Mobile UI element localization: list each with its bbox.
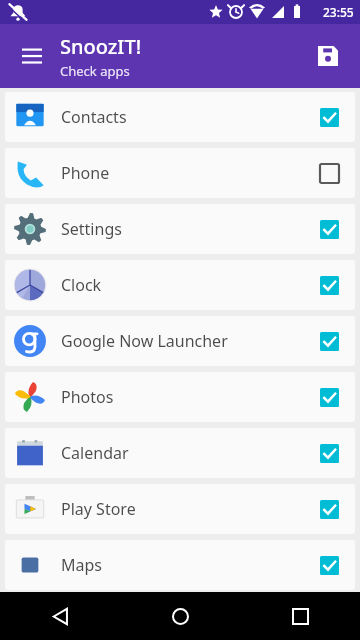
button[interactable]: Maps	[5, 540, 355, 590]
button[interactable]: Play Store	[5, 484, 355, 534]
button[interactable]: Checked Photos	[309, 377, 349, 417]
button[interactable]: Checked Contacts	[309, 97, 349, 137]
button[interactable]: Open navigation menu	[8, 32, 56, 80]
button[interactable]: Checked Clock	[309, 265, 349, 305]
button[interactable]: Checked Settings	[309, 209, 349, 249]
staticText: Google Now Launcher	[61, 330, 228, 352]
staticText: Play Store	[61, 498, 136, 520]
button[interactable]: Phone	[5, 148, 355, 198]
button[interactable]: Checked Google Now Launcher	[309, 321, 349, 361]
button[interactable]: Settings	[5, 204, 355, 254]
button[interactable]: Back	[0, 592, 120, 640]
staticText: SnoozIT!	[60, 33, 142, 60]
button[interactable]: Unchecked Phone	[309, 153, 349, 193]
button[interactable]: Checked Maps	[309, 545, 349, 585]
staticText: Settings	[61, 218, 122, 240]
staticText: Photos	[61, 386, 114, 408]
button[interactable]: Home	[120, 592, 240, 640]
button[interactable]: Save	[304, 32, 352, 80]
staticText: Maps	[61, 554, 102, 576]
button[interactable]: Contacts	[5, 92, 355, 142]
staticText: Clock	[61, 274, 102, 296]
button[interactable]: Photos	[5, 372, 355, 422]
staticText: Calendar	[61, 442, 129, 464]
button[interactable]: Checked Calendar	[309, 433, 349, 473]
button[interactable]: Google Now Launcher	[5, 316, 355, 366]
staticText: Contacts	[61, 106, 127, 128]
button[interactable]: Checked Play Store	[309, 489, 349, 529]
button[interactable]: Recent apps	[240, 592, 360, 640]
staticText: Check apps	[60, 62, 130, 80]
button[interactable]: Calendar	[5, 428, 355, 478]
staticText: Phone	[61, 162, 110, 184]
button[interactable]: Clock	[5, 260, 355, 310]
staticText: 23:55	[323, 4, 354, 20]
